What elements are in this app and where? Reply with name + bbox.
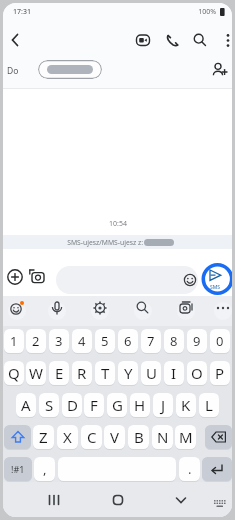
staticText: O: [191, 363, 203, 383]
staticText: 0: [216, 332, 224, 350]
button[interactable]: [38, 60, 102, 79]
staticText: 7: [147, 332, 155, 350]
staticText: 9: [193, 332, 201, 350]
staticText: S: [45, 395, 54, 415]
button[interactable]: W: [26, 361, 46, 385]
button[interactable]: [165, 33, 180, 48]
button[interactable]: [6, 31, 24, 49]
staticText: 10:54: [88, 219, 148, 232]
button[interactable]: Q: [4, 361, 24, 385]
staticText: 100%: [186, 7, 216, 20]
button[interactable]: [45, 491, 63, 509]
button[interactable]: [9, 300, 25, 316]
button[interactable]: B: [128, 425, 149, 449]
staticText: D: [67, 395, 78, 415]
button[interactable]: M: [175, 425, 196, 449]
button[interactable]: ,: [34, 457, 55, 481]
button[interactable]: [178, 300, 194, 316]
staticText: 17:31: [13, 7, 43, 20]
button[interactable]: A: [16, 393, 36, 417]
staticText: P: [215, 363, 225, 383]
staticText: C: [87, 427, 97, 447]
staticText: T: [101, 363, 110, 383]
button[interactable]: E: [49, 361, 69, 385]
button[interactable]: N: [152, 425, 173, 449]
button[interactable]: 5: [95, 329, 115, 353]
button[interactable]: [135, 32, 151, 48]
button[interactable]: P: [210, 361, 230, 385]
staticText: I: [171, 363, 177, 383]
staticText: A: [21, 395, 31, 415]
button[interactable]: L: [199, 393, 219, 417]
button[interactable]: O: [187, 361, 207, 385]
button[interactable]: [109, 491, 127, 509]
staticText: H: [134, 395, 146, 415]
button[interactable]: 4: [72, 329, 92, 353]
button[interactable]: [215, 302, 231, 314]
staticText: 4: [78, 332, 86, 350]
button[interactable]: V: [104, 425, 125, 449]
button[interactable]: [211, 61, 228, 78]
button[interactable]: Z: [33, 425, 54, 449]
button[interactable]: X: [57, 425, 78, 449]
staticText: Do: [7, 65, 27, 81]
button[interactable]: U: [141, 361, 161, 385]
button[interactable]: Y: [118, 361, 138, 385]
staticText: Y: [124, 363, 133, 383]
button[interactable]: 1: [4, 329, 24, 353]
button[interactable]: 7: [141, 329, 161, 353]
button[interactable]: [213, 499, 227, 511]
staticText: L: [205, 395, 213, 415]
staticText: V: [110, 427, 120, 447]
button[interactable]: .: [179, 457, 200, 481]
staticText: E: [55, 363, 64, 383]
button[interactable]: [29, 268, 47, 286]
button[interactable]: [193, 33, 208, 48]
staticText: M: [179, 427, 193, 447]
button[interactable]: 6: [118, 329, 138, 353]
button[interactable]: [49, 300, 65, 316]
button[interactable]: 0: [210, 329, 230, 353]
button[interactable]: 3: [49, 329, 69, 353]
staticText: 5: [101, 332, 109, 350]
button[interactable]: J: [153, 393, 173, 417]
staticText: 2: [32, 332, 40, 350]
staticText: ,: [43, 460, 47, 478]
staticText: W: [29, 363, 43, 383]
staticText: !#1: [11, 463, 25, 475]
button[interactable]: K: [176, 393, 196, 417]
button[interactable]: [92, 300, 108, 316]
staticText: X: [63, 427, 72, 447]
button[interactable]: I: [164, 361, 184, 385]
staticText: 8: [170, 332, 178, 350]
button[interactable]: [202, 457, 232, 481]
button[interactable]: D: [62, 393, 82, 417]
staticText: 3: [55, 332, 63, 350]
button[interactable]: F: [84, 393, 104, 417]
button[interactable]: [172, 491, 190, 509]
button[interactable]: S: [39, 393, 59, 417]
button[interactable]: [201, 262, 232, 296]
button[interactable]: !#1: [4, 457, 32, 481]
staticText: K: [181, 395, 191, 415]
staticText: R: [77, 363, 87, 383]
staticText: 6: [124, 332, 132, 350]
staticText: Z: [39, 427, 48, 447]
staticText: U: [146, 363, 157, 383]
button[interactable]: [135, 300, 151, 316]
button[interactable]: [205, 425, 232, 449]
button[interactable]: [6, 268, 24, 286]
button[interactable]: [222, 32, 232, 49]
button[interactable]: G: [107, 393, 127, 417]
button[interactable]: 2: [26, 329, 46, 353]
button[interactable]: [4, 425, 31, 449]
button[interactable]: 9: [187, 329, 207, 353]
button[interactable]: [56, 266, 198, 294]
button[interactable]: 8: [164, 329, 184, 353]
button[interactable]: R: [72, 361, 92, 385]
button[interactable]: T: [95, 361, 115, 385]
button[interactable]: H: [130, 393, 150, 417]
button[interactable]: C: [81, 425, 102, 449]
staticText: F: [90, 395, 98, 415]
